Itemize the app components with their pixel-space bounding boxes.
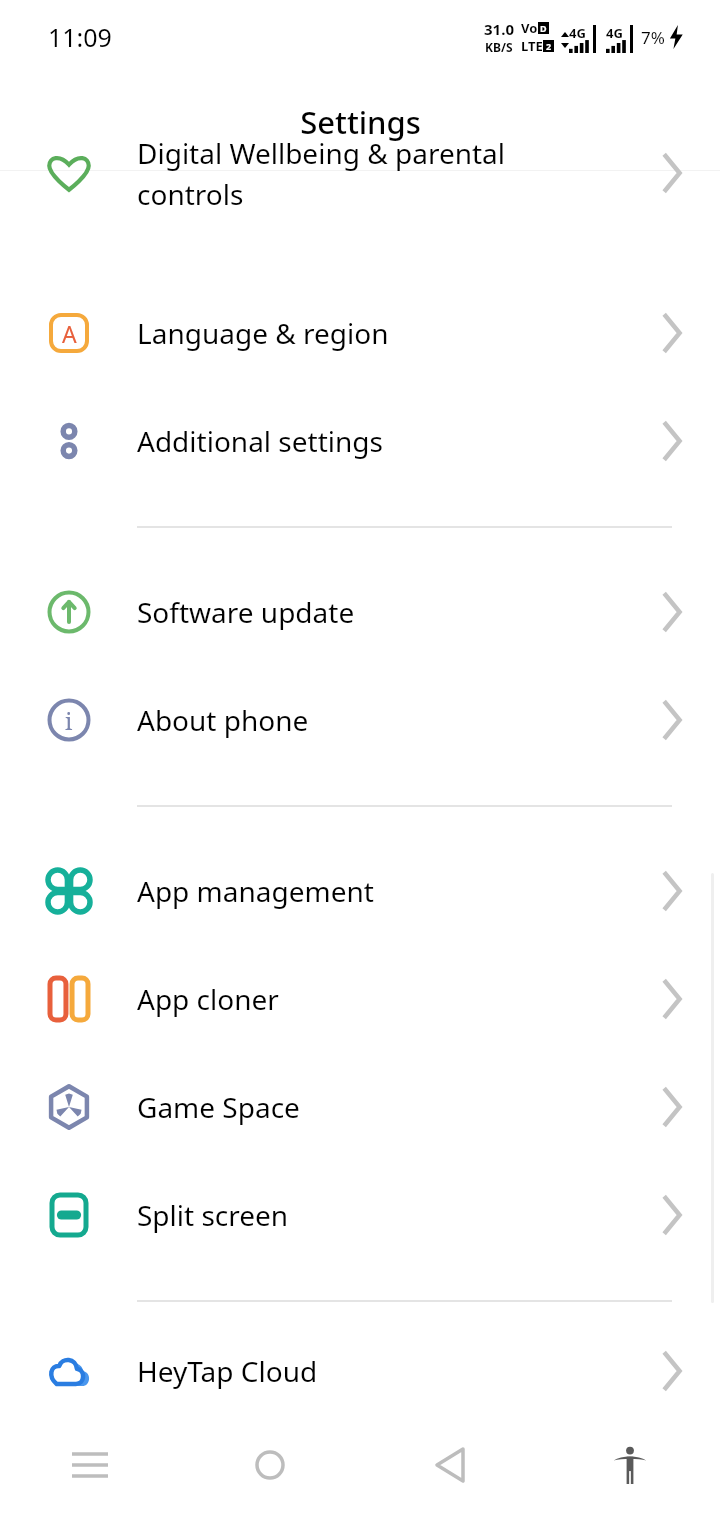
staticText: App cloner (137, 980, 624, 1018)
button[interactable]: Additional settings (0, 387, 720, 495)
staticText: i (65, 705, 73, 736)
staticText: D (540, 22, 547, 34)
staticText: Digital Wellbeing & parental controls (137, 134, 624, 213)
button[interactable]: Back (360, 1410, 540, 1520)
staticText: Language & region (137, 314, 624, 352)
staticText: HeyTap Cloud (137, 1352, 624, 1390)
button[interactable]: A (0, 279, 720, 387)
staticText: 4G (606, 24, 623, 42)
staticText: KB/S (485, 39, 513, 55)
button[interactable]: Home (180, 1410, 360, 1520)
button[interactable]: Game Space (0, 1053, 720, 1161)
button[interactable]: Accessibility (540, 1410, 720, 1520)
button[interactable]: App management (0, 837, 720, 945)
button[interactable]: i (0, 666, 720, 774)
button[interactable]: App cloner (0, 945, 720, 1053)
staticText: Software update (137, 593, 624, 631)
staticText: LTE (521, 37, 543, 55)
staticText: 7% (641, 26, 665, 49)
button[interactable]: Split screen (0, 1161, 720, 1269)
button[interactable]: Software update (0, 558, 720, 666)
staticText: Settings (300, 101, 421, 143)
staticText: 2 (546, 40, 552, 52)
staticText: Additional settings (137, 422, 624, 460)
staticText: A (62, 318, 77, 349)
staticText: About phone (137, 701, 624, 739)
staticText: 11:09 (48, 20, 112, 54)
button[interactable]: Recent apps (0, 1410, 180, 1520)
staticText: 31.0 (484, 19, 514, 39)
staticText: Game Space (137, 1088, 624, 1126)
staticText: Vo (521, 19, 538, 37)
staticText: Split screen (137, 1196, 624, 1234)
button[interactable]: HeyTap Cloud (0, 1332, 720, 1410)
button[interactable]: Digital Wellbeing & parental controls (0, 171, 720, 279)
staticText: App management (137, 872, 624, 910)
staticText: 4G (569, 24, 586, 42)
